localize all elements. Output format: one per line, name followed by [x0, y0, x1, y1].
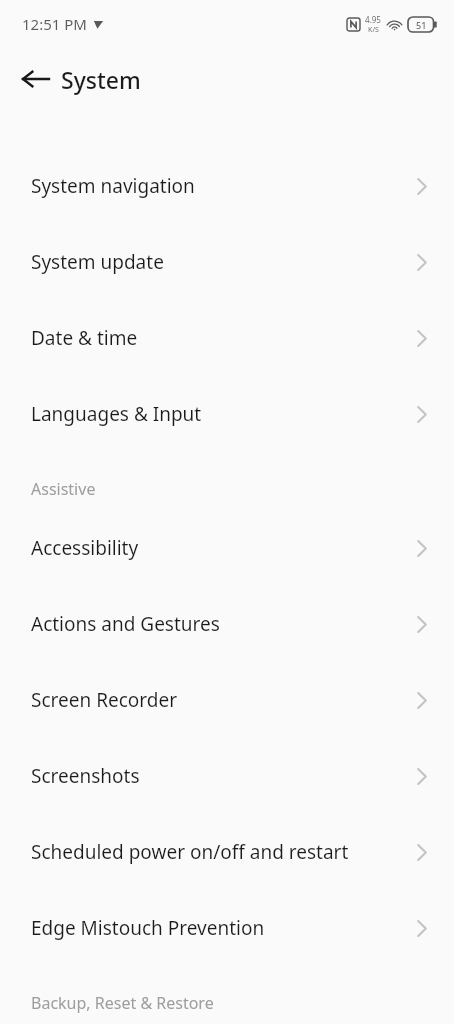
staticText: Actions and Gestures: [31, 611, 417, 637]
staticText: System: [61, 64, 141, 95]
button[interactable]: Screenshots: [0, 738, 454, 814]
staticText: K/S: [368, 25, 379, 35]
button[interactable]: Scheduled power on/off and restart: [0, 814, 454, 890]
staticText: 12:51 PM: [22, 14, 87, 34]
staticText: 51: [416, 19, 427, 31]
staticText: Edge Mistouch Prevention: [31, 915, 417, 941]
button[interactable]: System update: [0, 224, 454, 300]
button[interactable]: Screen Recorder: [0, 662, 454, 738]
staticText: Backup, Reset & Restore: [31, 992, 214, 1014]
button[interactable]: System navigation: [0, 148, 454, 224]
button[interactable]: Date & time: [0, 300, 454, 376]
staticText: Languages & Input: [31, 401, 417, 427]
staticText: Screen Recorder: [31, 687, 417, 713]
button[interactable]: Languages & Input: [0, 376, 454, 452]
staticText: 4.95: [365, 14, 381, 25]
staticText: System navigation: [31, 173, 417, 199]
staticText: Date & time: [31, 325, 417, 351]
button[interactable]: Back: [14, 57, 58, 101]
staticText: Scheduled power on/off and restart: [31, 839, 417, 865]
button[interactable]: Edge Mistouch Prevention: [0, 890, 454, 966]
staticText: Assistive: [31, 478, 96, 500]
button[interactable]: Actions and Gestures: [0, 586, 454, 662]
staticText: Screenshots: [31, 763, 417, 789]
button[interactable]: Accessibility: [0, 510, 454, 586]
staticText: Accessibility: [31, 535, 417, 561]
staticText: System update: [31, 249, 417, 275]
